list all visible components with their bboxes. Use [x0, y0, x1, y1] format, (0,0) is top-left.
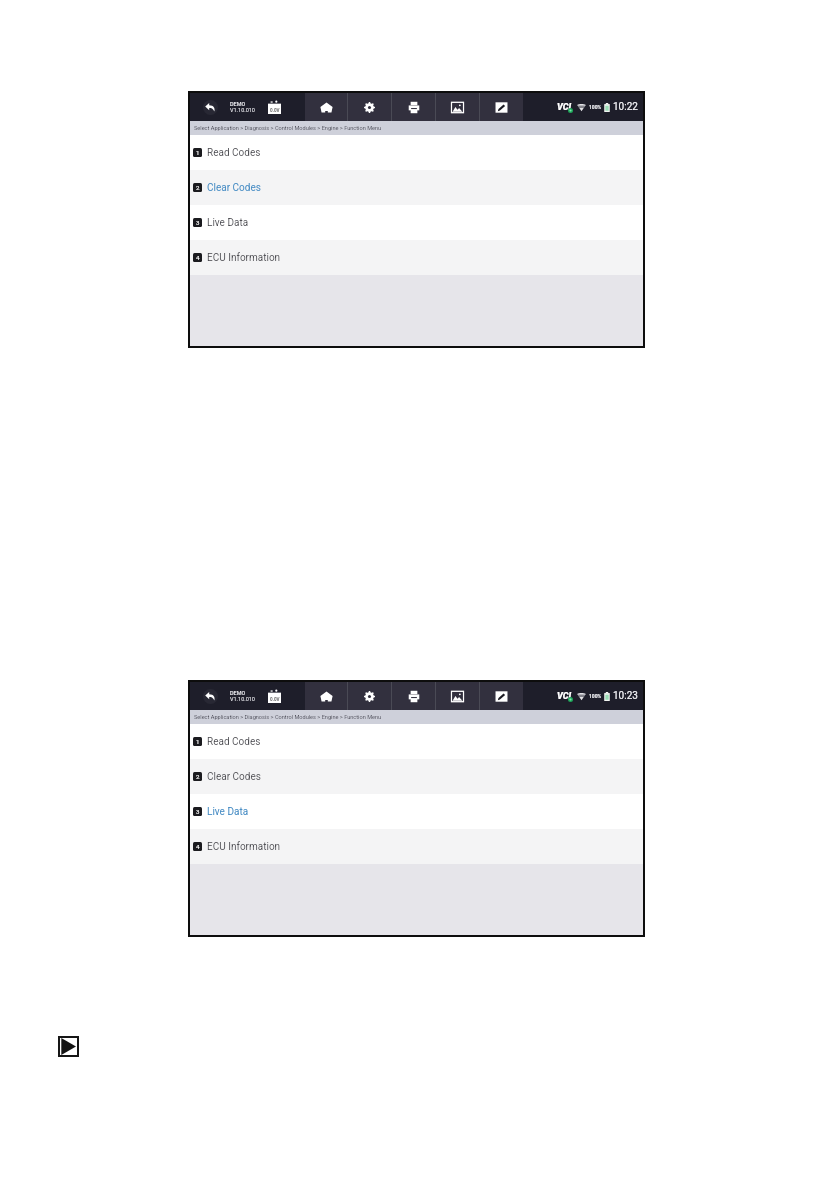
button[interactable]: 2 [190, 759, 643, 794]
button[interactable]: 3 [190, 794, 643, 829]
button[interactable]: Battery voltage [266, 682, 287, 710]
button[interactable]: Back [190, 93, 230, 121]
staticText: Clear Codes [207, 771, 261, 783]
staticText: Live Data [207, 217, 249, 229]
staticText: Read Codes [207, 736, 261, 748]
staticText: 10:22 [613, 101, 638, 113]
staticText: Select Application > Diagnosis > Control… [194, 125, 382, 132]
button[interactable]: Battery voltage [266, 93, 287, 121]
button[interactable]: Settings [348, 93, 391, 121]
staticText: V1.10.010 [230, 696, 255, 702]
staticText: 4 [196, 843, 200, 850]
staticText: ECU Information [207, 252, 281, 264]
staticText: VCI [557, 691, 572, 702]
button[interactable]: 1 [190, 135, 643, 170]
button[interactable]: Back [190, 682, 230, 710]
button[interactable]: 4 [190, 240, 643, 275]
staticText: 2 [196, 184, 200, 191]
button[interactable]: Edit [480, 93, 523, 121]
button[interactable]: Play [58, 1036, 79, 1057]
staticText: Read Codes [207, 147, 261, 159]
staticText: DEMO [230, 690, 246, 696]
staticText: 1 [196, 149, 200, 156]
button[interactable]: Edit [480, 682, 523, 710]
staticText: 100% [589, 104, 602, 110]
staticText: 4 [196, 254, 200, 261]
staticText: DEMO [230, 101, 246, 107]
staticText: Live Data [207, 806, 249, 818]
button[interactable]: Print [392, 682, 435, 710]
staticText: 0.0V [270, 697, 280, 702]
button[interactable]: 3 [190, 205, 643, 240]
button[interactable]: 2 [190, 170, 643, 205]
staticText: V1.10.010 [230, 107, 255, 113]
staticText: 3 [196, 219, 200, 226]
button[interactable]: Settings [348, 682, 391, 710]
button[interactable]: Home [305, 682, 347, 710]
button[interactable]: 4 [190, 829, 643, 864]
staticText: 10:23 [613, 690, 638, 702]
staticText: 1 [196, 738, 200, 745]
button[interactable]: 1 [190, 724, 643, 759]
button[interactable]: Home [305, 93, 347, 121]
staticText: VCI [557, 102, 572, 113]
staticText: 3 [196, 808, 200, 815]
button[interactable]: Screenshot [436, 93, 479, 121]
button[interactable]: Print [392, 93, 435, 121]
button[interactable]: Screenshot [436, 682, 479, 710]
staticText: Clear Codes [207, 182, 261, 194]
staticText: 2 [196, 773, 200, 780]
staticText: ECU Information [207, 841, 281, 853]
staticText: Select Application > Diagnosis > Control… [194, 714, 382, 721]
staticText: 0.0V [270, 108, 280, 113]
staticText: 100% [589, 693, 602, 699]
